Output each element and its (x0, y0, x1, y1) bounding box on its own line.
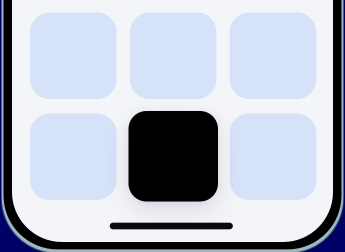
button[interactable]: App (30, 12, 116, 99)
button[interactable]: App (230, 12, 316, 99)
button[interactable]: App (130, 12, 216, 99)
button[interactable]: Selected app (128, 111, 218, 201)
button[interactable]: App (30, 113, 116, 200)
button[interactable]: App (230, 113, 316, 200)
